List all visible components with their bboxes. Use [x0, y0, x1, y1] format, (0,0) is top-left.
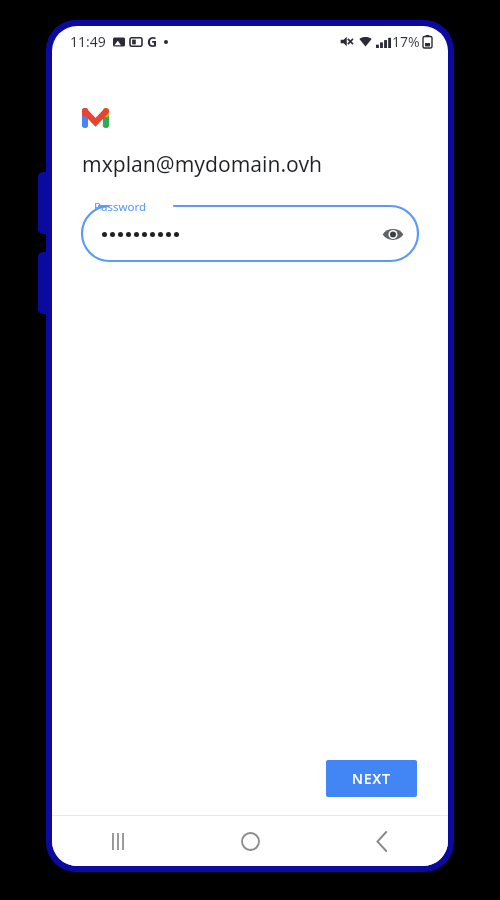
staticText: Password — [94, 199, 147, 215]
staticText: NEXT — [352, 769, 391, 788]
button[interactable]: NEXT — [326, 760, 417, 797]
staticText: G — [147, 32, 158, 51]
staticText: 11:49 — [70, 32, 106, 51]
button[interactable]: Home — [184, 816, 316, 866]
button[interactable]: Password — [82, 199, 418, 261]
button[interactable]: Show password — [376, 217, 410, 251]
button[interactable]: Back — [316, 816, 448, 866]
button[interactable]: Recent apps — [52, 816, 184, 866]
staticText: mxplan@mydomain.ovh — [82, 150, 323, 179]
staticText: 17% — [392, 32, 420, 51]
